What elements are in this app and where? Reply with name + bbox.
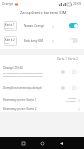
staticText: Brak karty SIM xyxy=(24,39,44,43)
staticText: Ustawiaj za każdym xyxy=(66,97,76,103)
staticText: Zarządzanie kartami SIM xyxy=(20,10,67,15)
button[interactable]: Toggle SIM card xyxy=(69,23,78,28)
staticText: Dostęp LTE/4G xyxy=(3,66,23,70)
staticText: 20:09 xyxy=(73,2,82,6)
button[interactable]: Select card xyxy=(61,70,65,74)
staticText: Slot SIM 1 xyxy=(5,27,15,30)
button[interactable]: Toggle SIM card xyxy=(69,38,78,43)
button[interactable]: Rozmowy przez: Karta 2 xyxy=(0,105,84,112)
button[interactable]: Recent apps xyxy=(18,138,28,148)
staticText: Karta 1 xyxy=(5,23,15,27)
button[interactable]: Rozmowy przez: Karta 1 xyxy=(0,95,84,105)
button[interactable]: Home xyxy=(37,138,47,148)
staticText: Karta 1 xyxy=(57,57,68,61)
button[interactable]: Select card xyxy=(72,86,76,90)
button[interactable]: Karta 1 xyxy=(0,18,84,33)
staticText: Karta 2 xyxy=(68,57,79,61)
button[interactable]: Select card xyxy=(72,70,76,74)
staticText: Orange xyxy=(2,2,14,6)
button[interactable]: Select card xyxy=(61,86,65,90)
button[interactable]: Back xyxy=(56,138,66,148)
staticText: Karta 2 xyxy=(5,38,15,42)
staticText: To urządzenie obsługuje połączenie zapew… xyxy=(3,71,43,77)
staticText: Domyślna transmisja danych xyxy=(3,86,43,90)
button[interactable]: Domyślna transmisja danych xyxy=(0,81,84,95)
staticText: Slot xyxy=(5,42,9,45)
button[interactable]: Dostęp LTE/4G xyxy=(0,62,84,81)
staticText: Nazwa: Orange xyxy=(24,24,45,28)
staticText: Rozmowy przez: Karta 1 xyxy=(3,98,66,102)
button[interactable]: Karta 2 xyxy=(0,33,84,48)
staticText: Rozmowy przez: Karta 2 xyxy=(3,107,77,111)
